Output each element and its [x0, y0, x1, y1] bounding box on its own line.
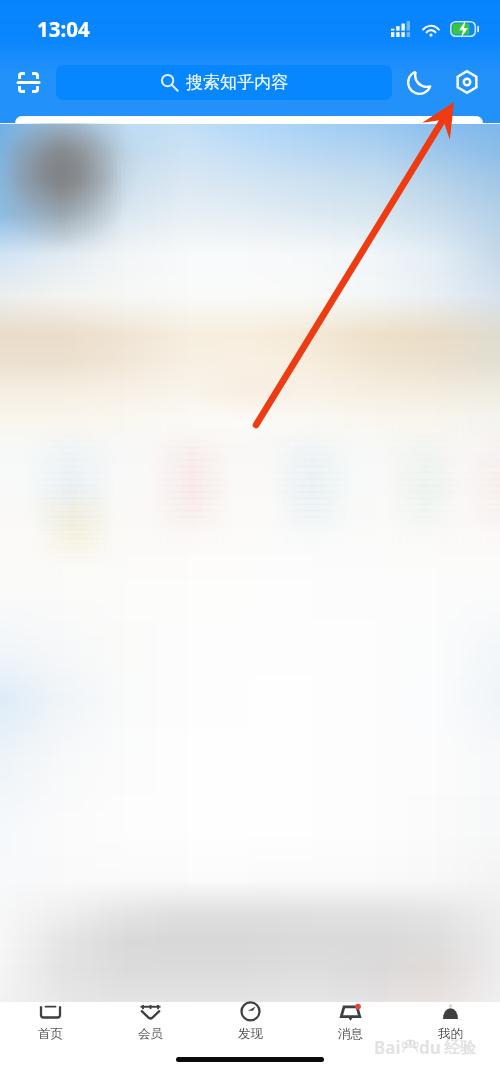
button[interactable]: 我的	[400, 1002, 500, 1048]
staticText: 经验	[444, 1038, 476, 1058]
button[interactable]: 设置	[447, 62, 487, 102]
staticText: 我的	[438, 1026, 463, 1042]
staticText: 发现	[238, 1026, 263, 1042]
staticText: du	[419, 1036, 441, 1059]
button[interactable]: 夜间模式	[399, 62, 439, 102]
button[interactable]: 首页	[0, 1002, 100, 1048]
staticText: 13:04	[37, 15, 90, 43]
staticText: Bai	[374, 1036, 401, 1059]
staticText: 首页	[38, 1026, 63, 1042]
button[interactable]: 扫一扫	[8, 62, 48, 102]
button[interactable]: 发现	[200, 1002, 300, 1048]
button[interactable]: 搜索知乎内容	[56, 65, 392, 100]
staticText: 搜索知乎内容	[186, 72, 288, 93]
staticText: 会员	[138, 1026, 163, 1042]
button[interactable]: 消息	[300, 1002, 400, 1048]
staticText: 消息	[338, 1026, 363, 1042]
button[interactable]: 会员	[100, 1002, 200, 1048]
